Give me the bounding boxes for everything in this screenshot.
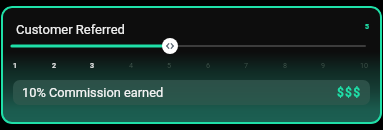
staticText: 9 — [321, 61, 326, 69]
staticText: 4 — [129, 61, 134, 69]
staticText: 3 — [90, 61, 95, 69]
button[interactable]: 10% Commission earned — [13, 80, 370, 105]
staticText: 10% Commission earned — [22, 85, 164, 100]
staticText: 7 — [244, 61, 249, 69]
staticText: 2 — [52, 61, 57, 69]
staticText: 5 — [365, 23, 370, 31]
button[interactable]: Referral count slider — [162, 38, 178, 54]
staticText: 1 — [13, 61, 18, 69]
staticText: 10 — [360, 61, 369, 69]
staticText: Customer Referred — [16, 22, 125, 37]
staticText: 6 — [206, 61, 211, 69]
staticText: $$$ — [337, 86, 362, 100]
staticText: 8 — [283, 61, 288, 69]
staticText: 5 — [167, 61, 172, 69]
